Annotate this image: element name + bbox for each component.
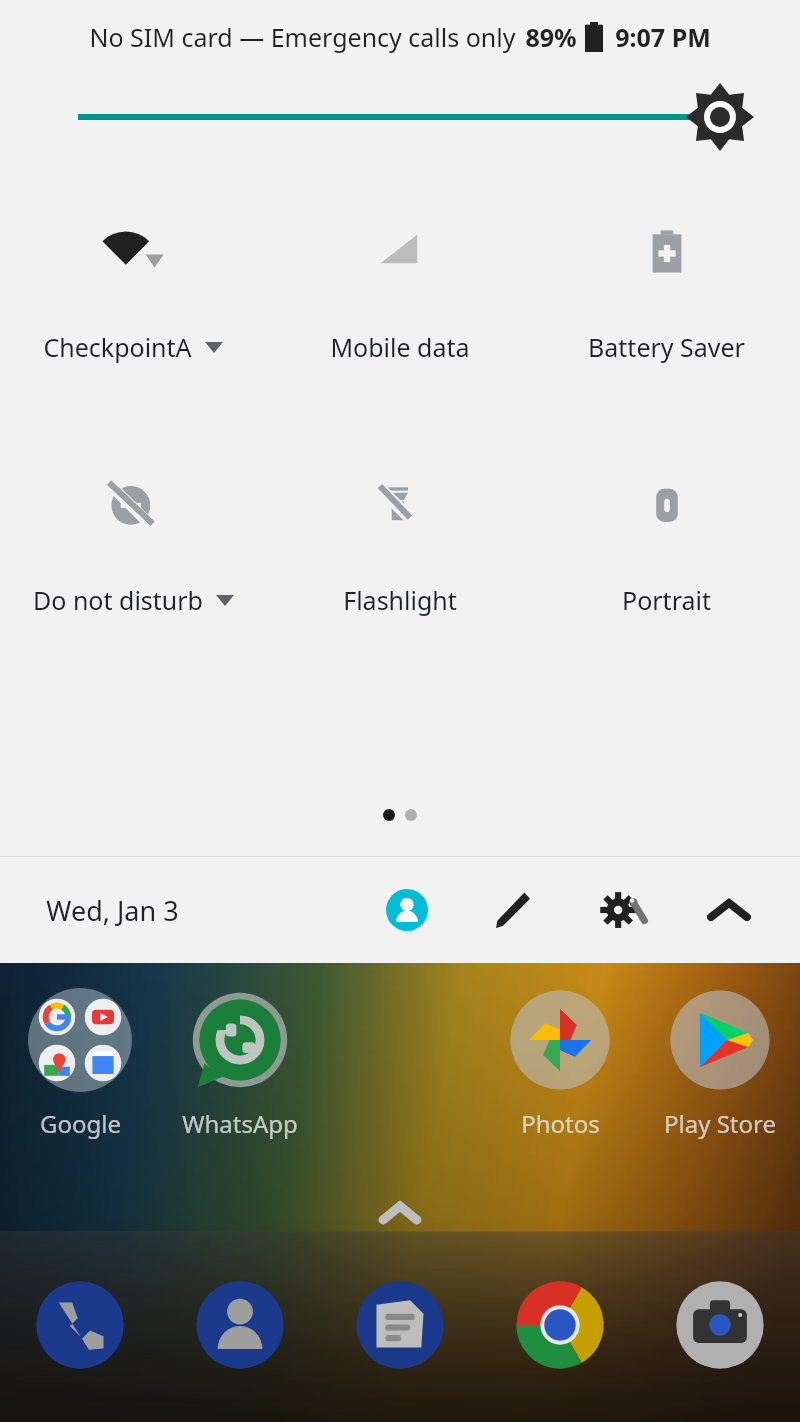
staticText: 9:07 PM [615,20,711,54]
button[interactable]: WhatsApp [160,981,320,1161]
button[interactable]: Play Store [640,981,800,1161]
button[interactable]: Settings [590,874,662,946]
button[interactable]: Brightness [0,74,800,160]
button[interactable]: Photos [480,981,640,1161]
button[interactable]: CheckpointA [0,216,266,368]
staticText: Do not disturb [33,583,203,617]
staticText: WhatsApp [182,1107,298,1140]
button[interactable]: Camera [640,1250,800,1400]
button[interactable]: Contacts [160,1250,320,1400]
staticText: CheckpointA [43,330,192,364]
staticText: Play Store [664,1107,776,1140]
button[interactable]: All apps [0,1191,800,1235]
button[interactable]: Chrome [480,1250,640,1400]
staticText: Google [40,1107,121,1140]
staticText: Photos [521,1107,600,1140]
button[interactable]: Portrait [533,469,800,621]
button[interactable]: Do not disturb [0,469,266,621]
button[interactable]: Edit [483,879,545,941]
staticText: Flashlight [343,583,457,617]
staticText: Wed, Jan 3 [46,892,179,929]
button[interactable]: Phone [0,1250,160,1400]
button[interactable]: User [376,879,438,941]
button[interactable]: Collapse [698,879,760,941]
staticText: No SIM card — Emergency calls only [89,20,516,54]
button[interactable]: Mobile data [266,216,533,368]
staticText: Battery Saver [588,330,745,364]
button[interactable]: Google [0,981,160,1161]
button[interactable]: Messages [320,1250,480,1400]
staticText: Mobile data [330,330,470,364]
staticText: 89% [525,20,577,54]
button[interactable]: Battery Saver [533,216,800,368]
staticText: Portrait [622,583,711,617]
button[interactable]: Flashlight [266,469,533,621]
